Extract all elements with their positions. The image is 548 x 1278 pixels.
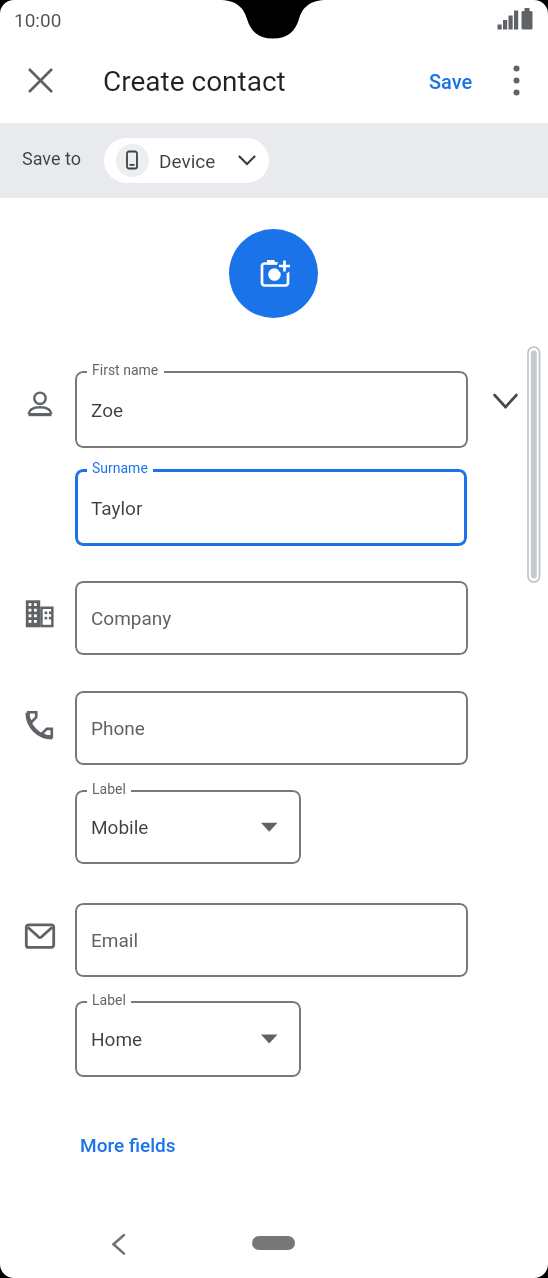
button[interactable] [24, 64, 57, 97]
staticText: Taylor [91, 497, 143, 519]
staticText: More fields [80, 1134, 176, 1156]
staticText: Zoe [91, 399, 124, 421]
staticText: Create contact [103, 65, 286, 98]
staticText: Phone [91, 717, 145, 739]
staticText: Company [91, 607, 172, 629]
staticText: Save [429, 70, 473, 93]
button[interactable]: More fields [80, 1134, 176, 1156]
button[interactable]: Home [75, 1001, 301, 1077]
staticText: Label [92, 781, 126, 797]
staticText: Email [91, 929, 139, 951]
staticText: Device [159, 150, 216, 172]
staticText: Home [91, 1028, 143, 1050]
staticText: 10:00 [14, 9, 62, 31]
button[interactable] [252, 1236, 295, 1250]
button[interactable] [100, 1224, 140, 1264]
staticText: Mobile [91, 816, 149, 838]
button[interactable]: Mobile [75, 790, 301, 864]
staticText: Surname [92, 460, 148, 476]
button[interactable]: Zoe [75, 371, 468, 448]
button[interactable]: Save [420, 62, 482, 100]
staticText: Save to [22, 148, 81, 169]
button[interactable] [229, 229, 318, 318]
button[interactable]: Email [75, 903, 468, 977]
staticText: First name [92, 362, 159, 378]
staticText: Label [92, 992, 126, 1008]
button[interactable]: Taylor [75, 469, 467, 546]
button[interactable]: Phone [75, 691, 468, 765]
button[interactable] [500, 64, 533, 97]
button[interactable]: Device [104, 138, 269, 183]
button[interactable]: Company [75, 581, 468, 655]
